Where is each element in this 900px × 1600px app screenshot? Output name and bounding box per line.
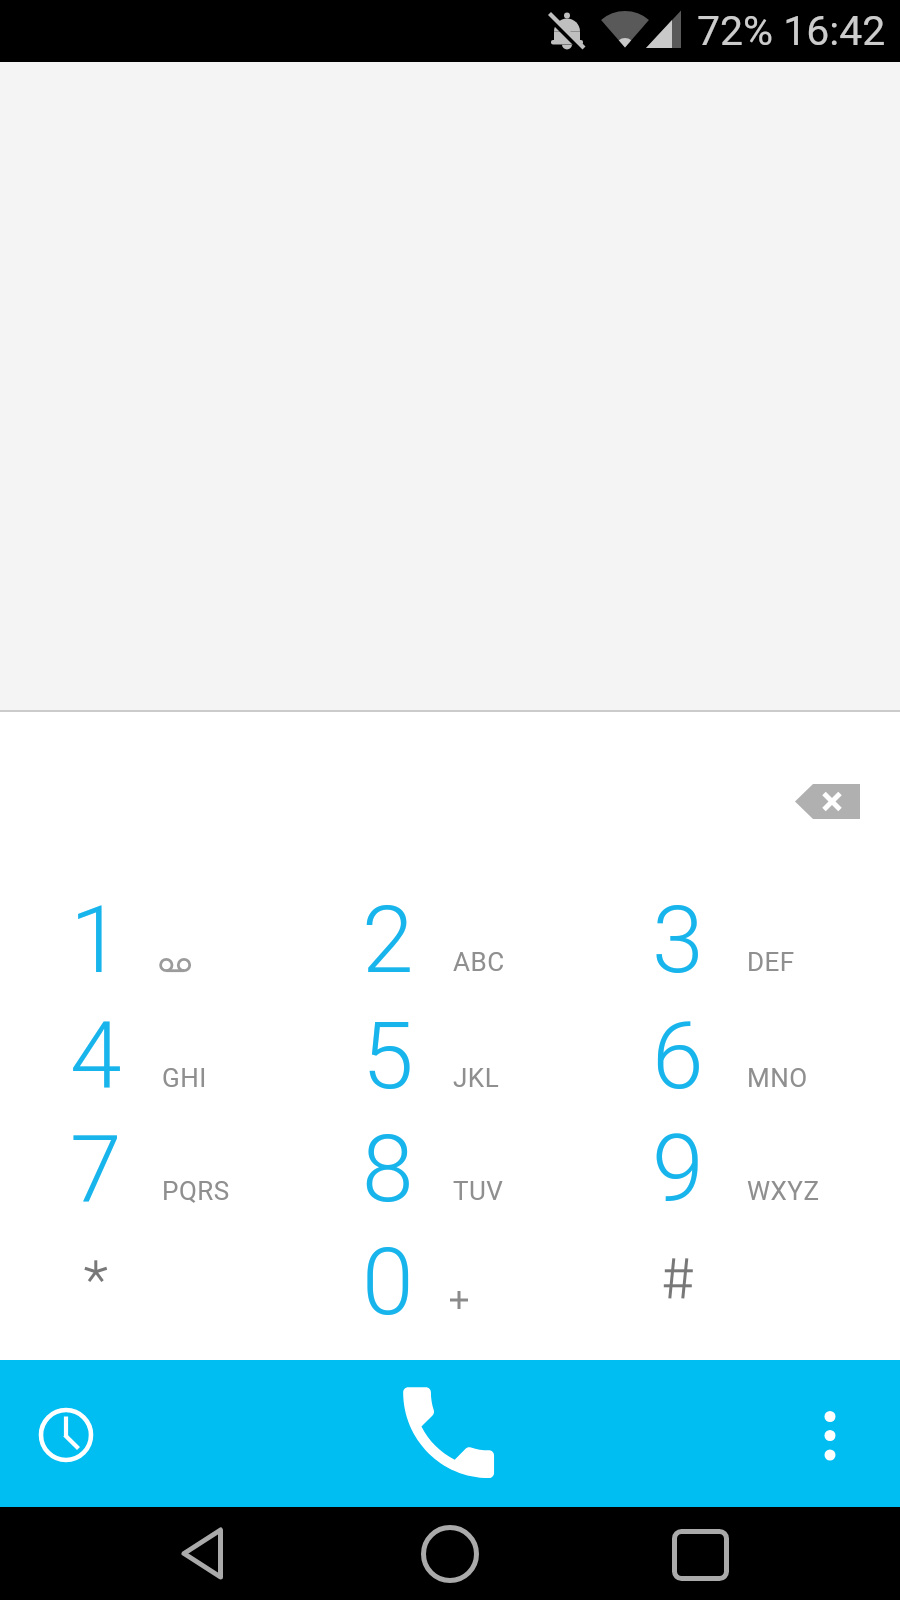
staticText: WXYZ [747,1176,820,1206]
staticText: ABC [453,947,505,977]
staticText: 8 [362,1115,414,1224]
button[interactable] [600,1223,900,1337]
staticText: DEF [747,947,795,977]
button[interactable]: 6 [600,999,900,1113]
button[interactable]: 0 [300,1225,600,1339]
button[interactable]: 9 [600,1112,900,1226]
button[interactable] [155,1507,285,1600]
button[interactable]: 5 [300,999,600,1113]
staticText: 3 [652,886,704,995]
button[interactable] [635,1507,765,1600]
button[interactable] [0,1223,300,1337]
staticText: 7 [70,1115,122,1224]
staticText: 6 [652,1002,704,1111]
staticText: 5 [362,1002,414,1111]
staticText: 0 [362,1228,414,1337]
staticText: 4 [70,1002,122,1111]
staticText: MNO [747,1063,808,1093]
button[interactable]: 2 [300,883,600,997]
button[interactable]: 3 [600,883,900,997]
staticText: PQRS [162,1176,230,1206]
staticText: 9 [652,1115,704,1224]
staticText: 2 [362,886,414,995]
staticText: JKL [453,1063,500,1093]
staticText: 1 [70,886,122,995]
button[interactable]: 4 [0,999,300,1113]
button[interactable]: 1 [0,883,300,997]
button[interactable] [16,1385,116,1485]
button[interactable]: 8 [300,1112,600,1226]
staticText: GHI [162,1063,207,1093]
button[interactable]: 7 [0,1112,300,1226]
button[interactable] [787,776,869,826]
staticText: TUV [453,1176,504,1206]
button[interactable] [390,1375,510,1495]
button[interactable] [780,1385,880,1485]
button[interactable] [385,1507,515,1600]
staticText: 72% 16:42 [697,7,886,55]
